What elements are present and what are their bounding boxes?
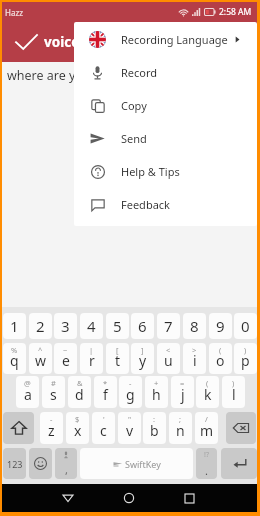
button[interactable]: !? <box>196 448 217 479</box>
staticText: * <box>103 378 108 388</box>
button[interactable]: 123 <box>3 448 26 479</box>
button[interactable]: ( <box>196 376 219 408</box>
button[interactable]: 2 <box>29 313 52 339</box>
staticText: ~ <box>63 345 68 355</box>
staticText: Recording Language <box>121 32 228 47</box>
staticText: . <box>205 463 208 478</box>
staticText: w <box>35 351 47 370</box>
staticText: - <box>50 414 53 424</box>
button[interactable]: Voice input <box>55 448 77 479</box>
button[interactable]: Shift <box>3 412 34 444</box>
button[interactable]: 3 <box>54 313 77 339</box>
staticText: # <box>51 378 56 388</box>
button[interactable]: Emoji <box>29 448 52 479</box>
staticText: 2 <box>36 316 45 336</box>
button[interactable]: 8 <box>183 313 206 339</box>
button[interactable]: Recents <box>175 484 203 512</box>
button[interactable]: [ <box>106 343 129 374</box>
staticText: Help & Tips <box>121 164 180 179</box>
button[interactable]: ) <box>222 376 245 408</box>
button[interactable]: Copy <box>74 89 257 122</box>
button[interactable]: Send <box>74 122 257 155</box>
staticText: ; <box>179 414 182 424</box>
button[interactable]: | <box>80 343 103 374</box>
button[interactable]: 5 <box>106 313 129 339</box>
staticText: !? <box>204 450 209 460</box>
staticText: < <box>166 345 171 355</box>
button[interactable]: $ <box>66 412 89 444</box>
staticText: x <box>74 421 82 440</box>
button[interactable]: & <box>68 376 91 408</box>
button[interactable]: ] <box>131 343 154 374</box>
button[interactable]: < <box>157 343 180 374</box>
staticText: 6 <box>138 316 147 336</box>
button[interactable]: Feedback <box>74 188 257 221</box>
button[interactable]: Home <box>115 484 143 512</box>
button[interactable]: = <box>171 376 194 408</box>
staticText: 8 <box>190 316 199 336</box>
button[interactable]: Help & Tips <box>74 155 257 188</box>
staticText: Record <box>121 65 158 80</box>
button[interactable]: Done <box>2 22 44 62</box>
button[interactable]: ^ <box>29 343 52 374</box>
button[interactable]: 6 <box>131 313 154 339</box>
staticText: ) <box>232 378 235 388</box>
staticText: Copy <box>121 98 147 113</box>
button[interactable]: Backspace <box>226 412 256 444</box>
button[interactable]: Recording Language <box>74 23 257 56</box>
staticText: where are you <box>7 67 91 84</box>
staticText: n <box>176 421 185 440</box>
button[interactable]: - <box>119 376 142 408</box>
button[interactable]: Enter <box>221 448 257 479</box>
staticText: Feedback <box>121 197 170 212</box>
button[interactable]: Back <box>54 484 82 512</box>
staticText: 123 <box>7 458 23 470</box>
staticText: + <box>154 378 159 388</box>
button[interactable]: - <box>40 412 63 444</box>
button[interactable]: ) <box>234 343 257 374</box>
button[interactable]: > <box>183 343 206 374</box>
staticText: > <box>192 345 197 355</box>
staticText: o <box>216 351 225 370</box>
staticText: u <box>164 351 173 370</box>
staticText: % <box>11 345 18 355</box>
button[interactable]: 9 <box>209 313 232 339</box>
staticText: @ <box>24 378 31 388</box>
button[interactable]: : <box>143 412 166 444</box>
staticText: SwiftKey <box>125 458 161 470</box>
staticText: ( <box>219 345 222 355</box>
button[interactable]: 7 <box>157 313 180 339</box>
staticText: ) <box>244 345 247 355</box>
staticText: b <box>150 421 159 440</box>
button[interactable]: Record <box>74 56 257 89</box>
button[interactable]: * <box>94 376 117 408</box>
staticText: 2:58 AM <box>219 6 252 18</box>
staticText: s <box>50 385 57 404</box>
button[interactable]: ' <box>92 412 115 444</box>
button[interactable]: ~ <box>54 343 77 374</box>
button[interactable]: 4 <box>80 313 103 339</box>
staticText: e <box>62 351 70 370</box>
staticText: " <box>128 414 132 424</box>
staticText: m <box>200 421 214 440</box>
staticText: ' <box>103 414 105 424</box>
staticText: i <box>193 351 197 370</box>
staticText: $ <box>75 414 80 424</box>
button[interactable]: / <box>195 412 218 444</box>
button[interactable]: + <box>145 376 168 408</box>
staticText: f <box>103 385 108 404</box>
staticText: l <box>232 385 236 404</box>
staticText: k <box>204 385 212 404</box>
button[interactable]: Space <box>80 448 193 479</box>
button[interactable]: 1 <box>3 313 26 339</box>
button[interactable]: ; <box>169 412 192 444</box>
button[interactable]: % <box>3 343 26 374</box>
button[interactable]: " <box>118 412 141 444</box>
button[interactable]: @ <box>16 376 39 408</box>
staticText: Hazz <box>5 7 23 18</box>
staticText: = <box>180 378 185 388</box>
button[interactable]: # <box>42 376 65 408</box>
staticText: j <box>181 385 185 404</box>
button[interactable]: 0 <box>234 313 257 339</box>
button[interactable]: ( <box>209 343 232 374</box>
